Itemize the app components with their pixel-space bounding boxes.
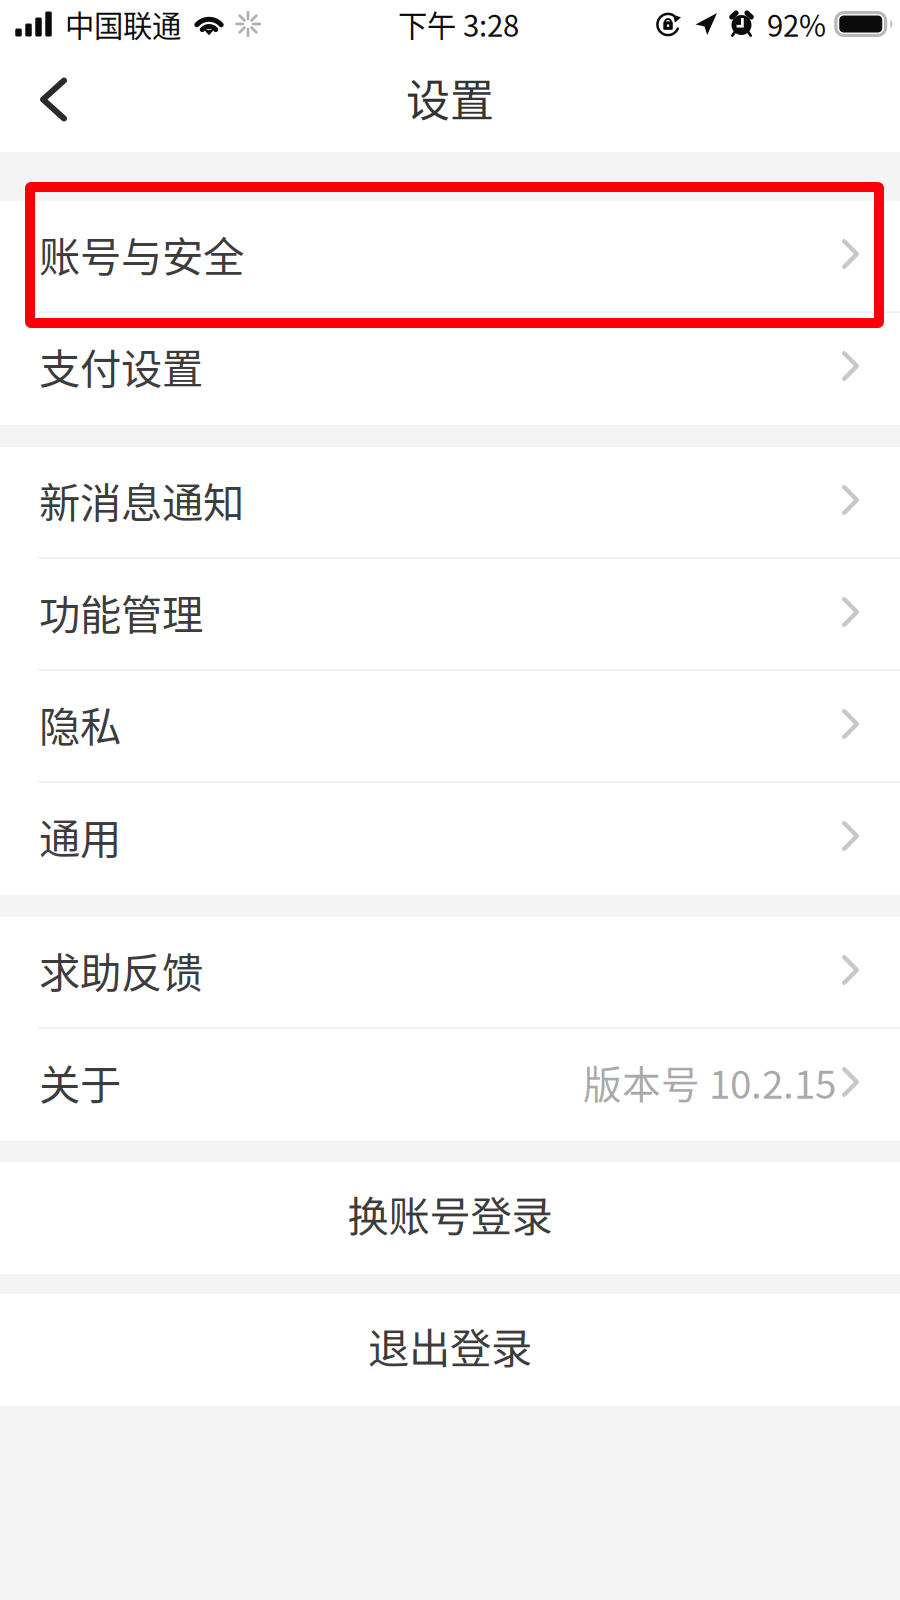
staticText: 隐私 (39, 694, 121, 754)
button[interactable]: 关于 (0, 1029, 900, 1141)
staticText: 版本号 10.2.15 (583, 1054, 836, 1110)
staticText: 退出登录 (368, 1316, 532, 1375)
button[interactable]: 通用 (0, 783, 900, 895)
staticText: 设置 (406, 66, 494, 129)
button[interactable]: 支付设置 (0, 313, 900, 425)
staticText: 功能管理 (39, 582, 203, 642)
staticText: 92% (767, 3, 826, 45)
staticText: 求助反馈 (39, 940, 203, 1000)
button[interactable]: 账号与安全 (0, 201, 900, 313)
staticText: 账号与安全 (39, 224, 244, 284)
button[interactable]: 新消息通知 (0, 447, 900, 559)
button[interactable]: 返回 (0, 55, 107, 144)
button[interactable]: 功能管理 (0, 559, 900, 671)
button[interactable]: 求助反馈 (0, 917, 900, 1029)
staticText: 关于 (39, 1052, 121, 1112)
staticText: 换账号登录 (347, 1184, 552, 1243)
staticText: 通用 (39, 806, 121, 866)
staticText: 支付设置 (39, 336, 203, 396)
staticText: 中国联通 (65, 3, 181, 45)
button[interactable]: 退出登录 (0, 1294, 900, 1406)
staticText: 新消息通知 (39, 470, 244, 530)
staticText: 下午 3:28 (398, 3, 519, 45)
button[interactable]: 换账号登录 (0, 1162, 900, 1274)
button[interactable]: 隐私 (0, 671, 900, 783)
